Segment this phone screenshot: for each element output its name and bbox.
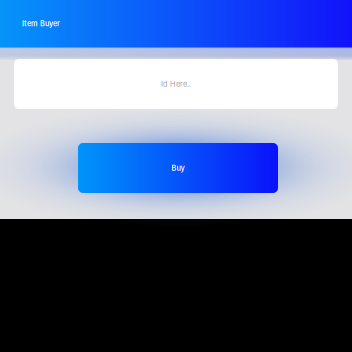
button[interactable]: Id Here..: [14, 59, 338, 109]
staticText: Buy: [171, 164, 184, 172]
staticText: Item Buyer: [22, 19, 60, 28]
button[interactable]: Buy: [78, 143, 278, 193]
staticText: Id Here..: [161, 79, 191, 88]
